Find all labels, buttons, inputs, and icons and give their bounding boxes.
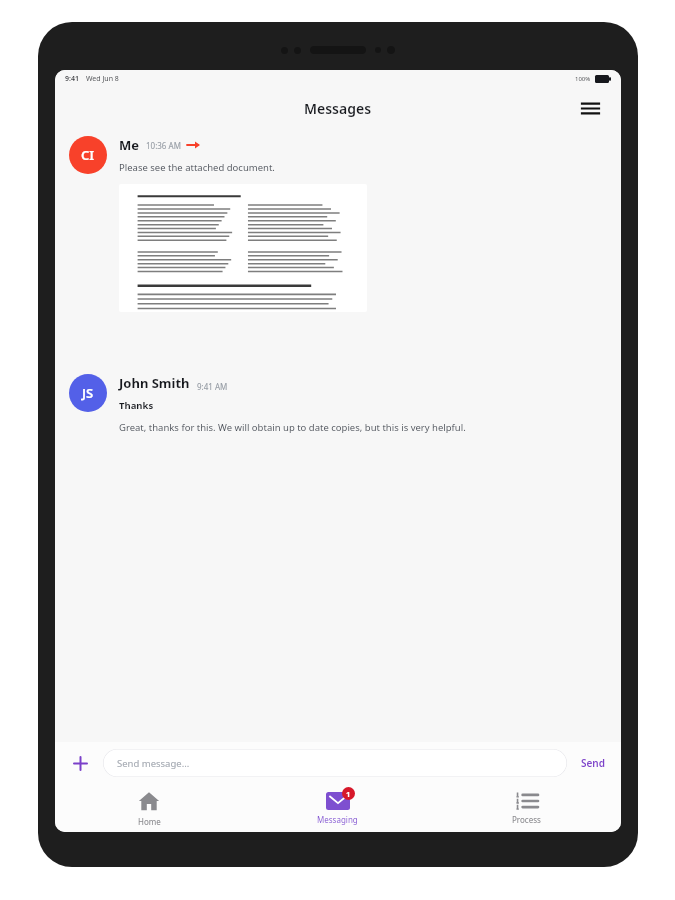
button[interactable]: Attached document preview [119,184,367,312]
staticText: Send [581,756,605,770]
staticText: Please see the attached document. [119,161,275,174]
staticText: John Smith [119,374,190,392]
staticText: Great, thanks for this. We will obtain u… [119,421,466,434]
staticText: 100% [575,75,591,83]
staticText: Messages [304,99,372,118]
button[interactable]: Menu [577,95,603,121]
staticText: Process [512,814,541,825]
staticText: Send message... [117,757,190,770]
staticText: JS [82,384,94,402]
staticText: Wed Jun 8 [86,74,119,84]
staticText: Thanks [119,399,154,412]
staticText: 10:36 AM [146,140,181,151]
staticText: 1 [346,789,351,799]
button[interactable]: Home [55,784,243,832]
staticText: 9:41 [65,74,79,84]
button[interactable]: Send [579,752,607,774]
staticText: Me [119,136,140,154]
staticText: 9:41 AM [197,381,228,392]
staticText: Messaging [317,814,358,825]
button[interactable]: Add attachment [69,752,91,774]
button[interactable]: 1 [243,784,432,832]
staticText: CI [81,146,95,164]
button[interactable]: Process [432,784,621,832]
button[interactable]: Send message... [103,749,567,777]
staticText: Home [138,816,161,827]
